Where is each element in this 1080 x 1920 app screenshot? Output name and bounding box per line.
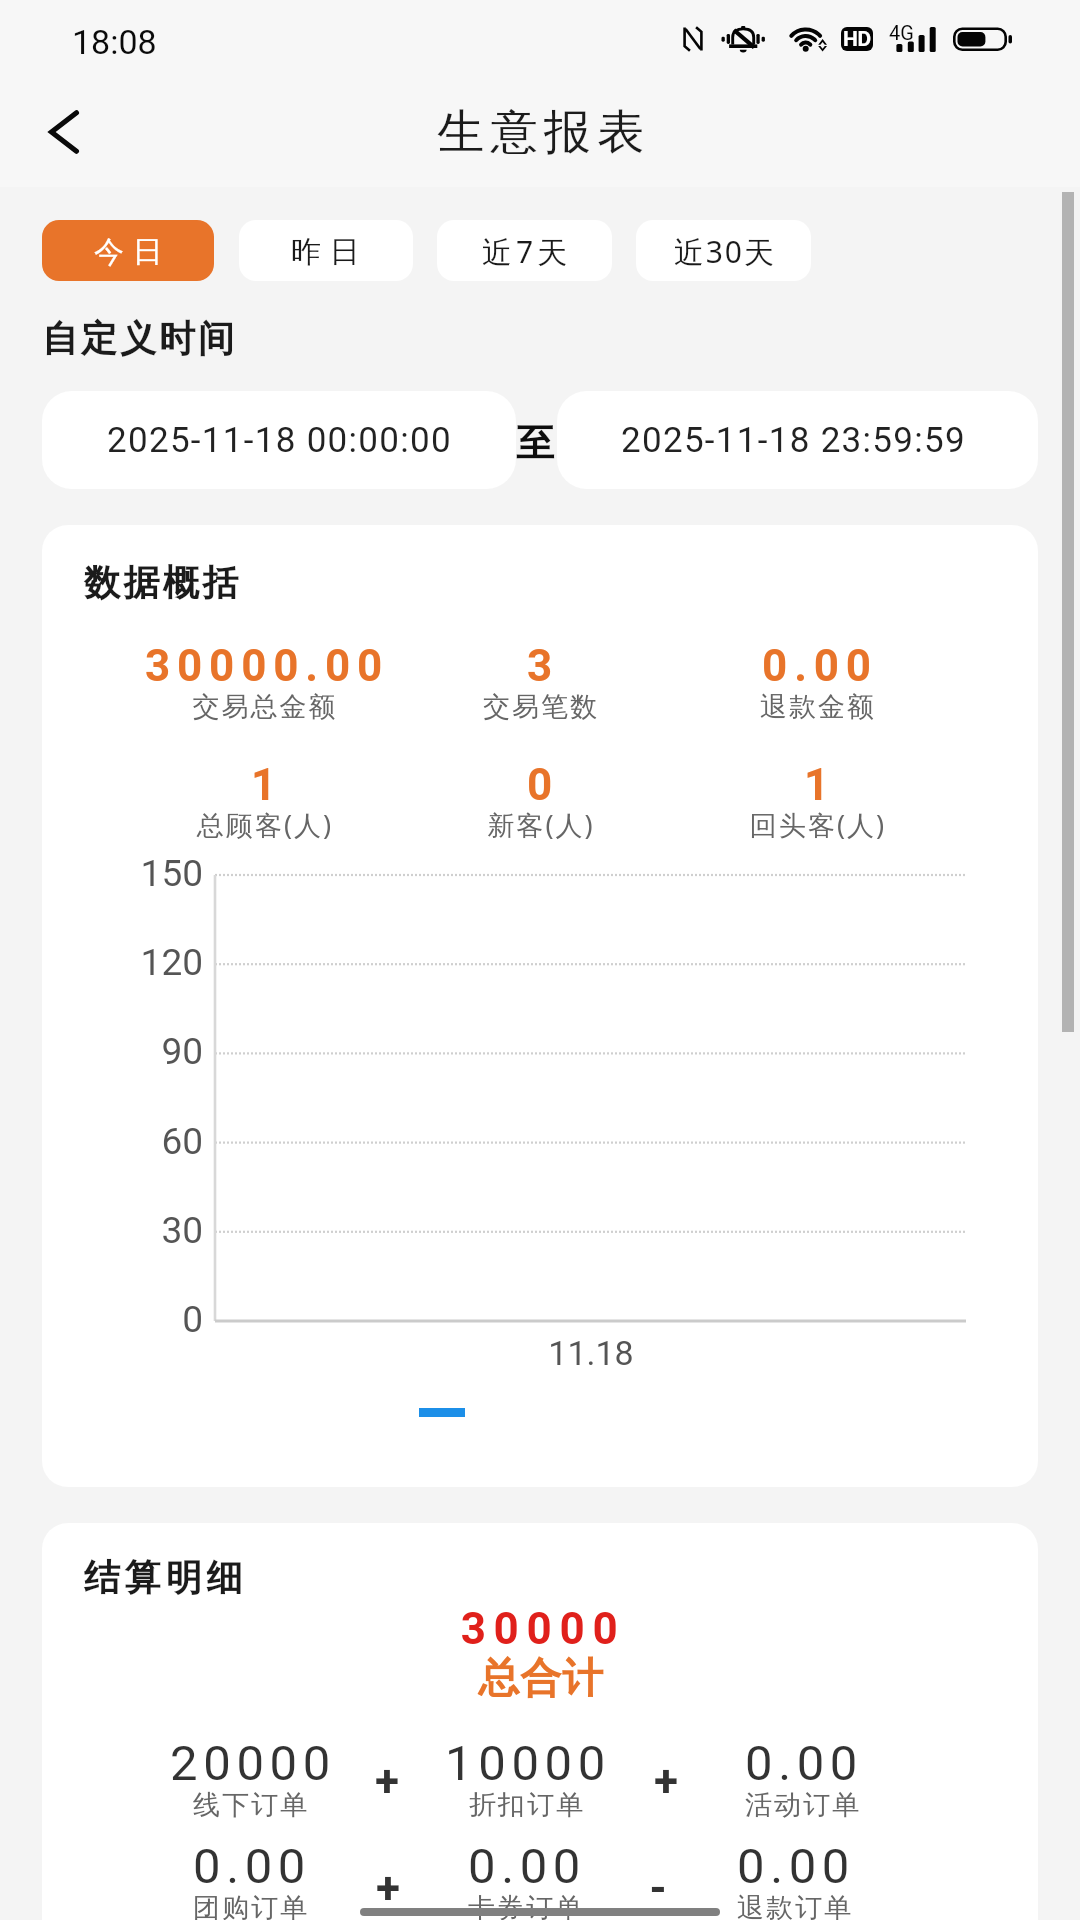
staticText: 昨日 [291,233,369,271]
staticText: 0 [45,1298,203,1341]
staticText: 退款金额 [618,690,1018,724]
staticText: 折扣订单 [327,1788,727,1822]
staticText: 60 [45,1120,203,1163]
staticText: 今日 [94,233,172,271]
staticText: 回头客(人) [618,806,1018,843]
staticText: 活动订单 [603,1788,1003,1822]
staticText: 0.00 [327,1838,727,1895]
staticText: 4G [889,21,914,44]
staticText: 90 [45,1030,203,1073]
staticText: 结算明细 [84,1555,248,1600]
staticText: 线下订单 [51,1788,451,1822]
staticText: 2025-11-18 00:00:00 [107,420,452,461]
staticText: 30000 [343,1603,743,1655]
staticText: 0.00 [604,1735,1004,1792]
staticText: + [348,1862,428,1914]
staticText: 总合计 [341,1653,741,1705]
staticText: 团购订单 [51,1891,451,1920]
staticText: 交易笔数 [341,690,741,724]
staticText: + [626,1755,706,1807]
staticText: 数据概括 [84,560,242,605]
staticText: 18:08 [72,22,157,62]
staticText: 11.18 [491,1333,691,1373]
staticText: 3 [343,640,743,692]
staticText: 新客(人) [341,806,741,843]
staticText: 近30天 [674,231,776,272]
staticText: 交易总金额 [65,690,465,724]
staticText: 120 [45,941,203,984]
button[interactable]: 今日 [42,220,214,281]
staticText: 生意报表 [344,103,744,162]
staticText: 至 [516,419,554,467]
staticText: 1 [620,759,1020,811]
staticText: 退款订单 [595,1891,995,1920]
button[interactable]: 昨日 [239,220,413,281]
staticText: 0.00 [620,640,1020,692]
staticText: + [347,1755,427,1807]
staticText: 0.00 [596,1838,996,1895]
staticText: HD [843,27,871,51]
button[interactable]: 2025-11-18 23:59:59 [557,391,1038,489]
staticText: 30000.00 [67,640,467,692]
staticText: - [618,1862,698,1914]
staticText: 卡券订单 [326,1891,726,1920]
staticText: 0.00 [52,1838,452,1895]
staticText: 自定义时间 [42,316,238,361]
staticText: 总顾客(人) [65,806,465,843]
staticText: 近7天 [482,231,571,272]
staticText: 20000 [53,1735,453,1792]
button[interactable]: 近30天 [636,220,811,281]
staticText: 2025-11-18 23:59:59 [621,420,966,461]
staticText: 1 [67,759,467,811]
button[interactable]: 2025-11-18 00:00:00 [42,391,516,489]
staticText: 30 [45,1209,203,1252]
button[interactable]: 近7天 [437,220,612,281]
staticText: 150 [45,852,203,895]
staticText: 10000 [328,1735,728,1792]
button[interactable]: Back [28,96,100,168]
staticText: 0 [343,759,743,811]
